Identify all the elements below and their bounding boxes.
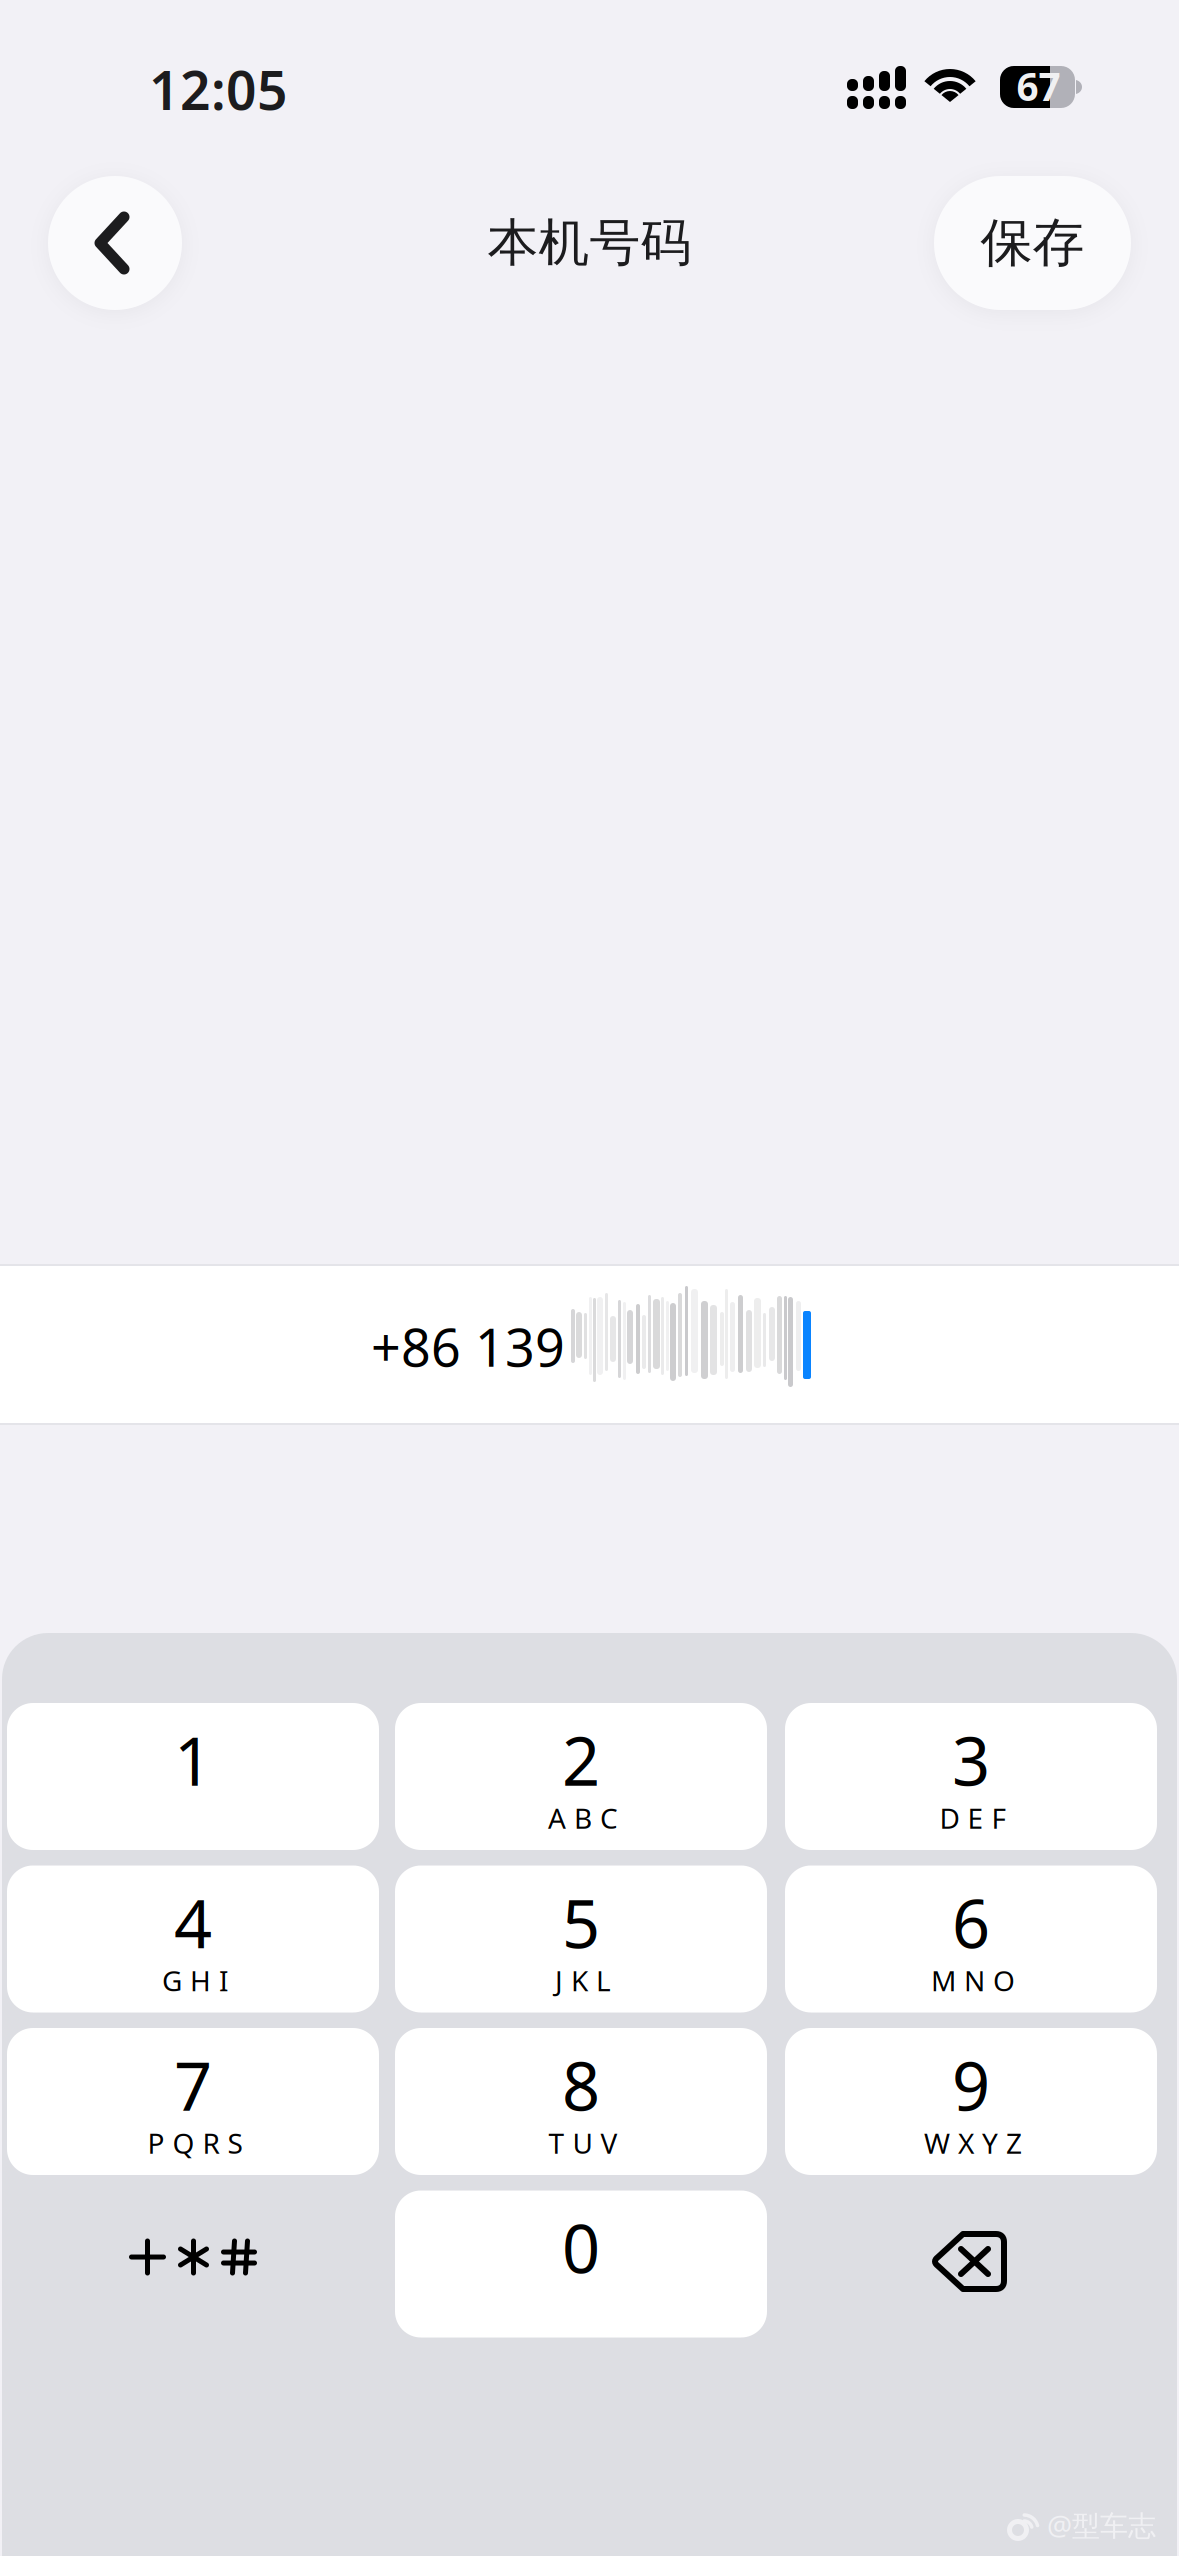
- button[interactable]: 保存: [934, 176, 1131, 310]
- button[interactable]: Back: [48, 176, 182, 310]
- staticText: 12:05: [149, 54, 288, 125]
- staticText: 0: [562, 2203, 600, 2292]
- staticText: 1: [174, 1716, 212, 1804]
- staticText: 3: [952, 1716, 990, 1804]
- staticText: 9: [952, 2041, 990, 2129]
- button[interactable]: 9: [785, 2028, 1157, 2175]
- staticText: 本机号码: [487, 212, 691, 274]
- staticText: 5: [562, 1878, 600, 1967]
- button[interactable]: 3: [785, 1703, 1157, 1850]
- staticText: PQRS: [147, 2124, 242, 2162]
- staticText: MNO: [931, 1962, 1015, 1999]
- button[interactable]: 2: [395, 1703, 767, 1850]
- button[interactable]: 6: [785, 1865, 1157, 2012]
- staticText: +86 139: [371, 1312, 565, 1381]
- staticText: TUV: [548, 2124, 617, 2162]
- button[interactable]: 1: [7, 1703, 379, 1850]
- staticText: 4: [174, 1878, 212, 1967]
- staticText: JKL: [555, 1962, 611, 1999]
- staticText: 67: [1016, 60, 1060, 112]
- button[interactable]: 0: [395, 2190, 767, 2337]
- button[interactable]: 4: [7, 1865, 379, 2012]
- staticText: DEF: [939, 1799, 1006, 1837]
- button[interactable]: 5: [395, 1865, 767, 2012]
- staticText: ABC: [548, 1799, 618, 1837]
- staticText: WXYZ: [924, 2124, 1022, 2162]
- staticText: GHI: [162, 1962, 228, 1999]
- button[interactable]: Symbols: [7, 2183, 379, 2330]
- staticText: 2: [562, 1716, 600, 1804]
- button[interactable]: Delete: [785, 2190, 1157, 2337]
- staticText: @型车志: [1047, 2506, 1156, 2544]
- staticText: 保存: [980, 211, 1084, 275]
- staticText: 6: [952, 1878, 990, 1967]
- button[interactable]: 7: [7, 2028, 379, 2175]
- button[interactable]: 8: [395, 2028, 767, 2175]
- staticText: 8: [562, 2041, 600, 2129]
- staticText: 7: [174, 2041, 212, 2129]
